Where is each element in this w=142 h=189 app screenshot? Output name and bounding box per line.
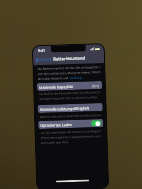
staticText: Zurück xyxy=(39,56,52,62)
staticText: Die Batterie verliert mit der Zeit an Ka… xyxy=(37,65,100,71)
staticText: Maximale Leistungsfähigkeit xyxy=(40,105,90,112)
staticText: Batteriezustand xyxy=(53,55,85,62)
button[interactable]: Maximale Kapazität xyxy=(37,81,102,91)
staticText: 85 % xyxy=(92,84,100,88)
staticText: dem Laden über 80 %. xyxy=(41,140,70,145)
button[interactable]: Zurück xyxy=(36,56,52,62)
staticText: sich die Laufzeit pro Ladung verringert.… xyxy=(38,70,101,76)
staticText: Leistung … xyxy=(70,75,85,80)
button[interactable]: Optimiertes Laden xyxy=(38,119,103,129)
staticText: 9:41 xyxy=(38,48,46,53)
button[interactable]: Maximale Leistungsfähigkeit xyxy=(38,103,103,113)
button[interactable]: dich über Batterie und xyxy=(38,75,85,81)
staticText: dich über Batterie und xyxy=(38,76,70,81)
staticText: Batterie unterstützt zurzeit die normale… xyxy=(40,113,101,119)
staticText: Um die Lebensdauer der Batterie zu verlä… xyxy=(40,129,101,135)
button[interactable]: Optimiertes Laden umschalten xyxy=(91,120,101,126)
staticText: Optimiertes Laden xyxy=(40,122,72,128)
staticText: Geringere Kapazität führt zu kürzerer La… xyxy=(39,95,98,101)
staticText: Ein Maß für die Kapazität relativ zum Ne… xyxy=(39,90,100,96)
staticText: Maximale Kapazität xyxy=(39,84,73,90)
staticText: iPhone deine täglichen Ladegewohnheiten … xyxy=(41,134,102,140)
